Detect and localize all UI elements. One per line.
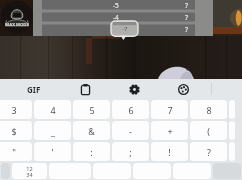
button[interactable]: 8 xyxy=(190,100,227,119)
staticText: ? xyxy=(185,13,189,22)
button[interactable]: 3 xyxy=(0,100,32,119)
button[interactable]: ? xyxy=(190,142,227,161)
button[interactable] xyxy=(229,121,235,140)
staticText: - xyxy=(129,125,132,137)
staticText: 4 xyxy=(50,104,56,116)
button[interactable]: -5 xyxy=(33,1,213,10)
staticText: MAX MODS xyxy=(5,22,29,28)
staticText: 5 xyxy=(89,104,95,116)
button[interactable]: 12 34 xyxy=(12,163,47,179)
staticText: ! xyxy=(168,146,171,158)
staticText: " xyxy=(12,146,16,158)
button[interactable] xyxy=(229,100,235,119)
staticText: GIF xyxy=(27,84,41,95)
button[interactable]: -4 xyxy=(33,13,213,22)
staticText: -5 xyxy=(113,1,119,10)
button[interactable]: _ xyxy=(34,121,71,140)
button[interactable]: -7 xyxy=(33,25,213,34)
button[interactable]: 5 xyxy=(73,100,110,119)
staticText: 7 xyxy=(167,104,173,116)
staticText: -4 xyxy=(113,13,119,22)
staticText: & xyxy=(88,125,95,137)
staticText: 6 xyxy=(128,104,134,116)
button[interactable]: ! xyxy=(151,142,188,161)
staticText: ' xyxy=(51,146,54,158)
button[interactable]: " xyxy=(0,142,32,161)
staticText: $ xyxy=(11,125,17,137)
button[interactable]: & xyxy=(73,121,110,140)
staticText: ; xyxy=(129,146,132,158)
button[interactable]: 4 xyxy=(34,100,71,119)
button[interactable]: + xyxy=(151,121,188,140)
button[interactable]: ( xyxy=(190,121,227,140)
staticText: 3 xyxy=(11,104,17,116)
staticText: + xyxy=(167,125,173,137)
staticText: ? xyxy=(207,146,211,158)
button[interactable]: Themes xyxy=(159,79,207,99)
button[interactable]: - xyxy=(112,121,149,140)
staticText: 8 xyxy=(206,104,212,116)
button[interactable]: GIF xyxy=(10,79,58,99)
staticText: _ xyxy=(51,125,55,137)
staticText: -7 xyxy=(122,25,128,33)
staticText: ? xyxy=(185,25,189,34)
staticText: ( xyxy=(207,125,210,137)
button[interactable]: Settings xyxy=(110,79,158,99)
button[interactable]: : xyxy=(73,142,110,161)
button[interactable]: 7 xyxy=(151,100,188,119)
staticText: ? xyxy=(185,1,189,10)
button[interactable]: Clipboard xyxy=(61,79,109,99)
staticText: 12 34 xyxy=(26,165,33,178)
button[interactable]: ' xyxy=(34,142,71,161)
button[interactable]: $ xyxy=(0,121,32,140)
button[interactable]: 6 xyxy=(112,100,149,119)
staticText: : xyxy=(90,146,93,158)
button[interactable] xyxy=(229,142,235,161)
button[interactable]: ; xyxy=(112,142,149,161)
